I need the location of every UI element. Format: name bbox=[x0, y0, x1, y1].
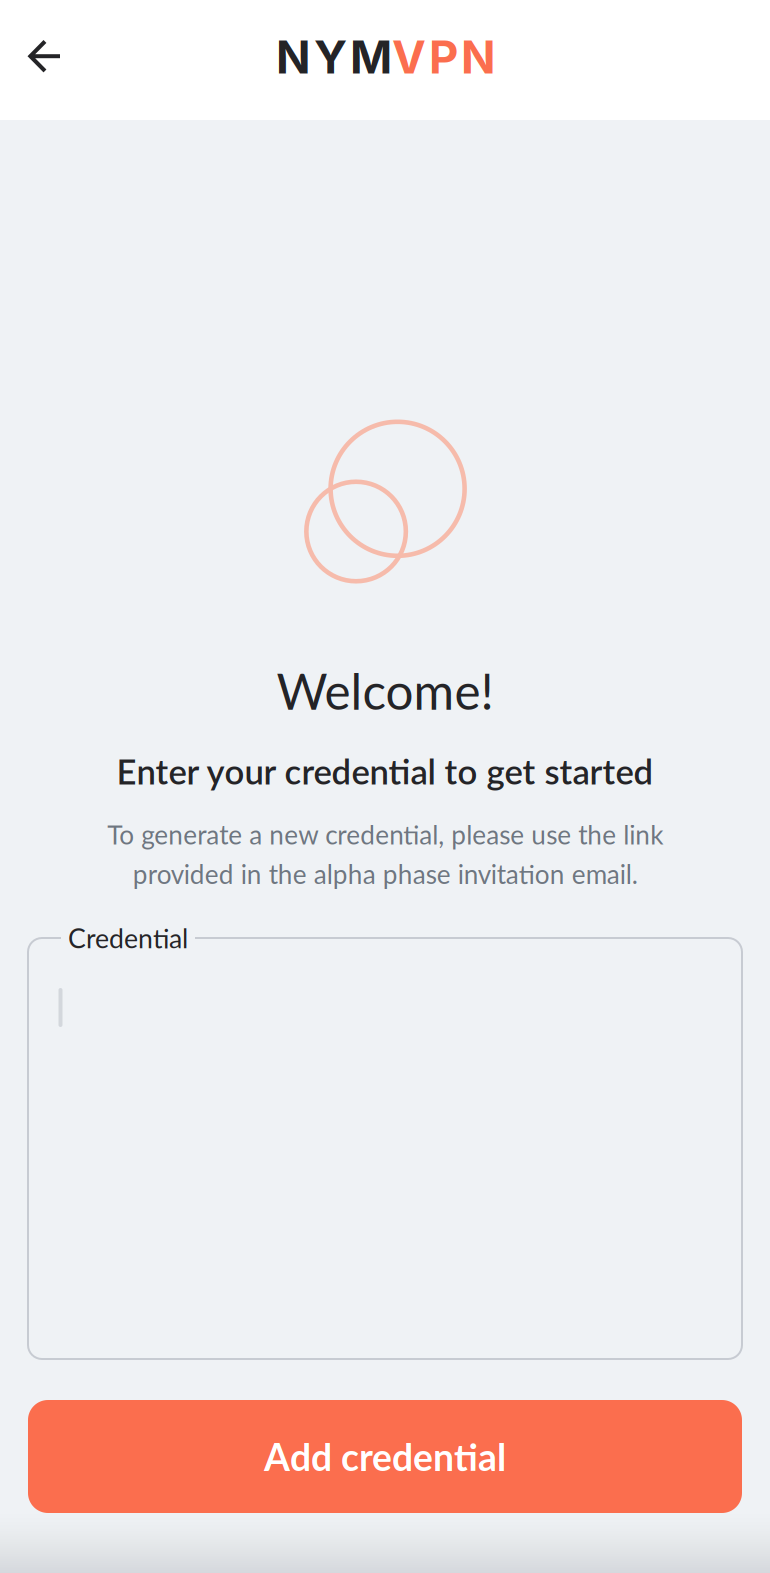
staticText: Welcome! bbox=[276, 661, 493, 720]
button[interactable]: Back bbox=[10, 22, 78, 90]
staticText: Enter your credential to get started bbox=[116, 750, 653, 792]
staticText: To generate a new credential, please use… bbox=[107, 819, 663, 889]
staticText: VPN bbox=[392, 30, 496, 84]
button[interactable]: Add credential bbox=[28, 1400, 742, 1513]
staticText: Credential bbox=[68, 922, 188, 954]
staticText: Add credential bbox=[264, 1434, 506, 1479]
staticText: NYM bbox=[276, 30, 392, 84]
